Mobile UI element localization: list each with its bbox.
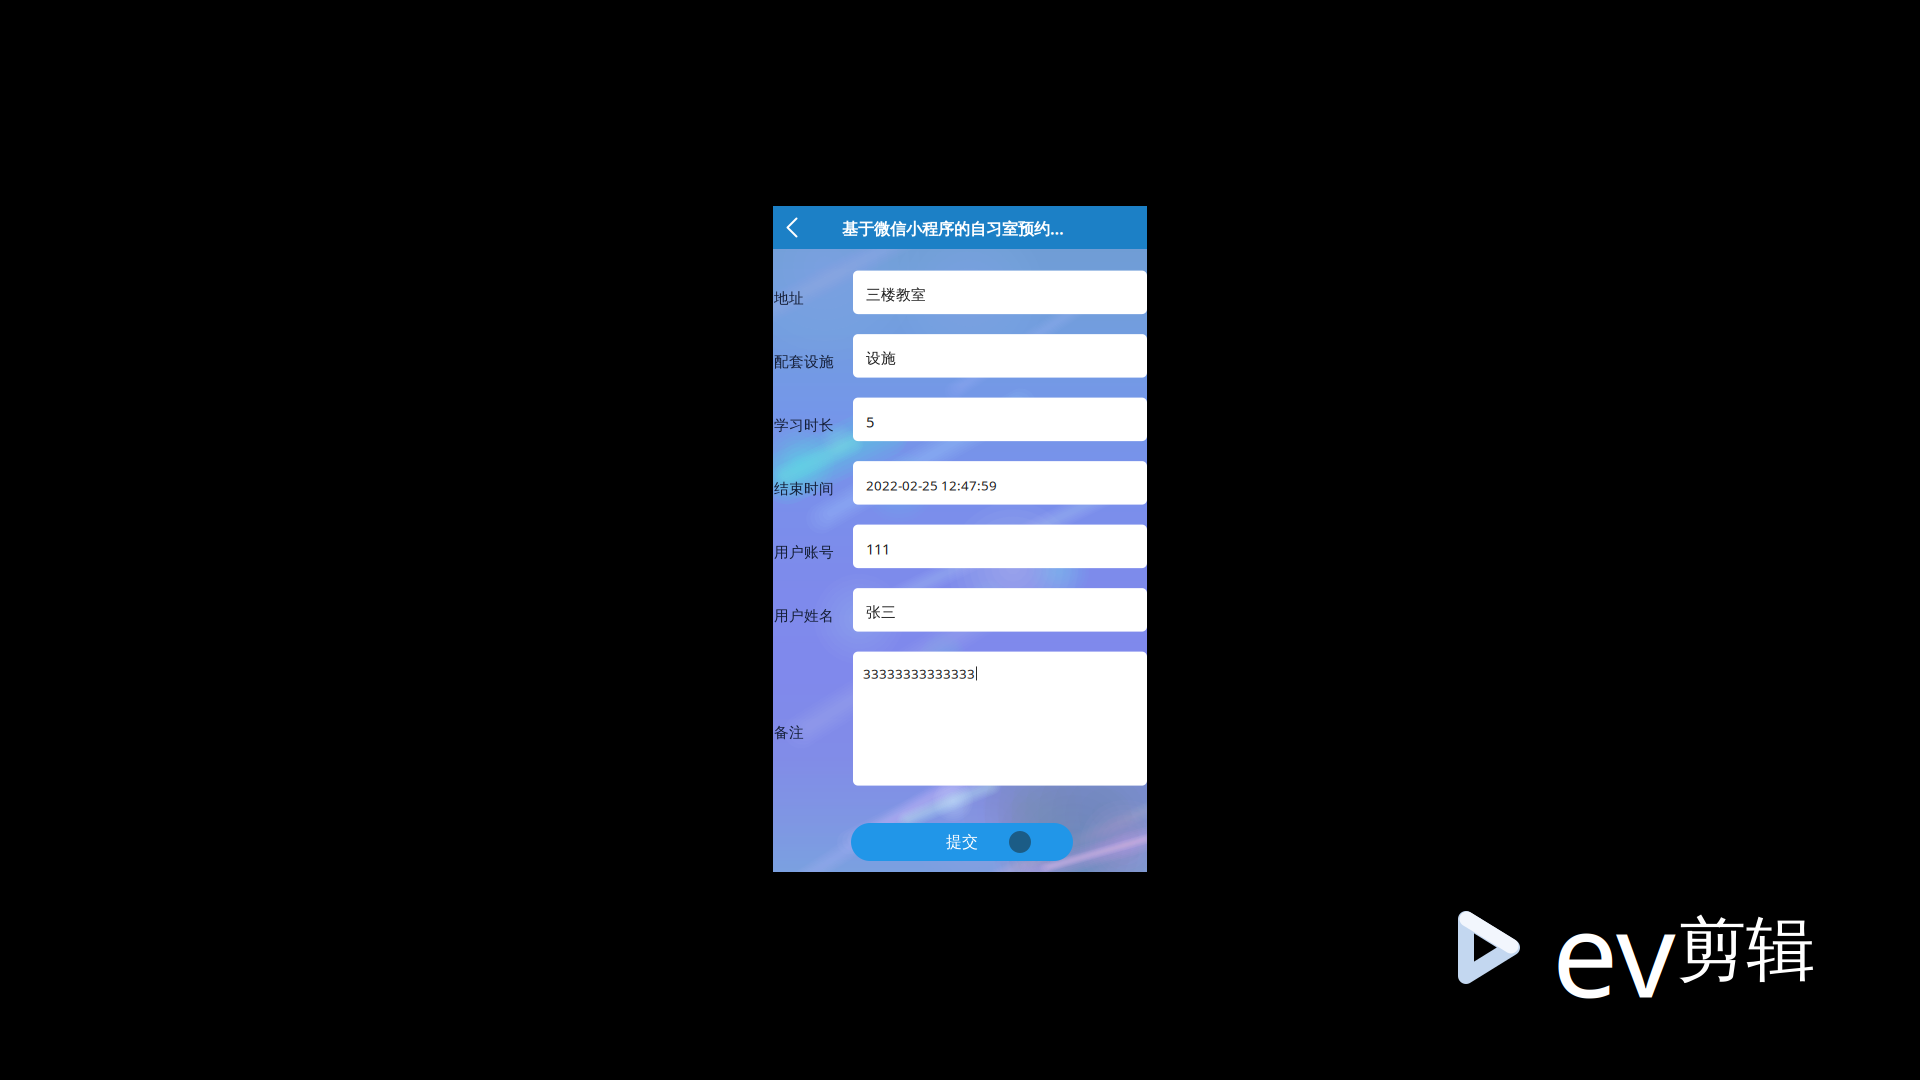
staticText: 5 <box>866 412 874 432</box>
button[interactable]: 设施 <box>853 334 1147 378</box>
staticText: 33333333333333 <box>863 665 975 682</box>
staticText: 用户账号 <box>774 543 834 561</box>
staticText: 2022-02-25 12:47:59 <box>866 476 997 494</box>
button[interactable]: 111 <box>853 525 1147 568</box>
staticText: 地址 <box>774 289 804 307</box>
staticText: 111 <box>866 539 890 559</box>
staticText: 剪辑 <box>1677 907 1815 993</box>
staticText: 提交 <box>946 832 978 852</box>
staticText: 用户姓名 <box>774 607 834 625</box>
staticText: 基于微信小程序的自习室预约… <box>842 218 1064 239</box>
button[interactable]: 33333333333333 <box>853 652 1147 786</box>
staticText: 学习时长 <box>774 416 834 434</box>
staticText: ev <box>1552 874 1676 1030</box>
button[interactable]: 返回 <box>773 206 811 249</box>
button[interactable]: 5 <box>853 398 1147 441</box>
staticText: 备注 <box>774 724 804 742</box>
button[interactable]: 张三 <box>853 588 1147 632</box>
button[interactable]: 提交 <box>851 823 1073 861</box>
button[interactable]: 2022-02-25 12:47:59 <box>853 461 1147 505</box>
staticText: 张三 <box>866 603 896 621</box>
button[interactable]: 三楼教室 <box>853 271 1147 314</box>
staticText: 结束时间 <box>774 480 834 498</box>
staticText: 设施 <box>866 349 896 367</box>
staticText: 配套设施 <box>774 353 834 371</box>
staticText: 三楼教室 <box>866 286 926 304</box>
